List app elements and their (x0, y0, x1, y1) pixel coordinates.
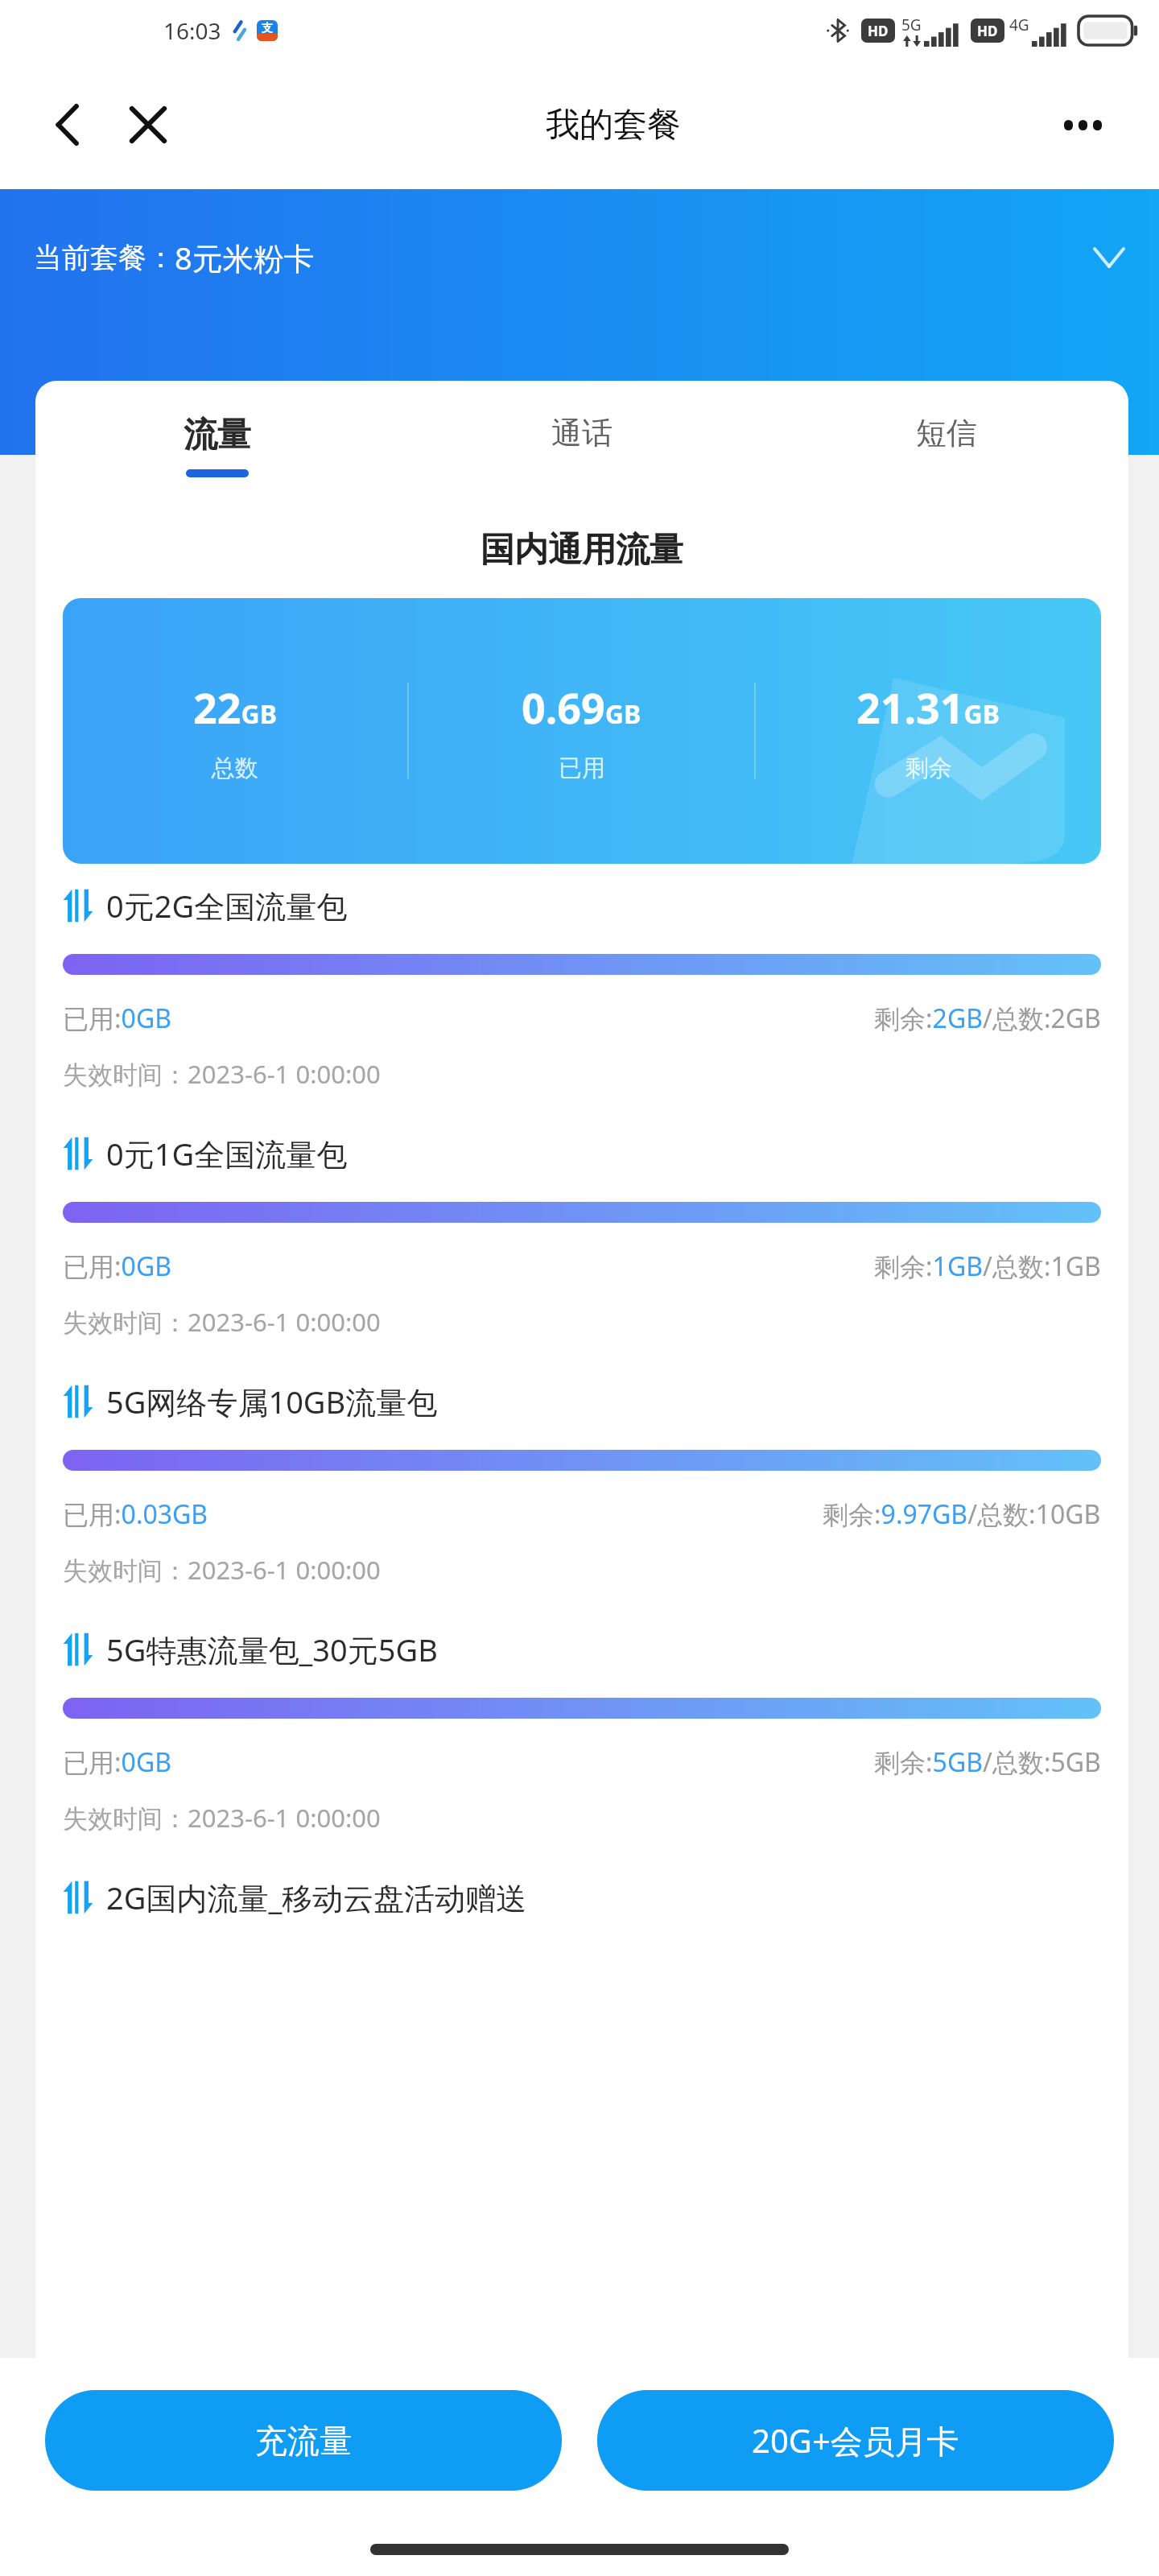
staticText: 当前套餐： (34, 240, 175, 275)
button[interactable]: 0元2G全国流量包 (63, 864, 1101, 1112)
staticText: 已用:0GB (63, 1744, 171, 1780)
staticText: 剩余:5GB/总数:5GB (874, 1744, 1101, 1780)
button[interactable]: More options (1046, 89, 1119, 161)
staticText: 5G (901, 14, 922, 35)
staticText: 失效时间：2023-6-1 0:00:00 (63, 1057, 381, 1091)
staticText: 剩余:1GB/总数:1GB (874, 1249, 1101, 1284)
staticText: 0.69GB (522, 679, 641, 736)
staticText: 8元米粉卡 (175, 237, 315, 279)
staticText: 剩余:9.97GB/总数:10GB (823, 1496, 1101, 1532)
staticText: 失效时间：2023-6-1 0:00:00 (63, 1801, 381, 1835)
staticText: 已用:0GB (63, 1249, 171, 1284)
staticText: HD (977, 22, 998, 40)
staticText: 国内通用流量 (481, 529, 683, 572)
button[interactable]: 5G特惠流量包_30元5GB (63, 1608, 1101, 1856)
button[interactable]: 充流量 (45, 2390, 562, 2491)
button[interactable]: 2G国内流量_移动云盘活动赠送 (63, 1856, 1101, 1942)
staticText: HD (868, 22, 889, 40)
staticText: 16:03 (163, 15, 221, 46)
button[interactable]: 0元1G全国流量包 (63, 1112, 1101, 1360)
staticText: 22GB (193, 679, 277, 736)
staticText: 4G (1009, 14, 1029, 35)
button[interactable]: Back (35, 93, 100, 157)
staticText: 21.31GB (856, 679, 1000, 736)
staticText: 流量 (184, 414, 251, 456)
staticText: 5G特惠流量包_30元5GB (106, 1629, 438, 1670)
button[interactable]: 当前套餐： (34, 189, 1124, 326)
staticText: 短信 (916, 414, 977, 452)
staticText: 通话 (551, 414, 612, 452)
button[interactable]: 流量 (35, 381, 399, 510)
staticText: 总数 (212, 753, 258, 783)
staticText: 已用:0GB (63, 1001, 171, 1036)
staticText: 2G国内流量_移动云盘活动赠送 (106, 1876, 527, 1918)
button[interactable]: 5G网络专属10GB流量包 (63, 1360, 1101, 1608)
staticText: 失效时间：2023-6-1 0:00:00 (63, 1305, 381, 1339)
staticText: 充流量 (255, 2421, 352, 2461)
staticText: 已用:0.03GB (63, 1496, 208, 1532)
staticText: 支 (262, 21, 273, 35)
staticText: 剩余:2GB/总数:2GB (874, 1001, 1101, 1036)
staticText: 5G网络专属10GB流量包 (106, 1381, 438, 1422)
staticText: 0元2G全国流量包 (106, 885, 348, 927)
staticText: 我的套餐 (546, 104, 681, 147)
staticText: 失效时间：2023-6-1 0:00:00 (63, 1553, 381, 1587)
button[interactable]: 短信 (764, 381, 1128, 510)
button[interactable]: Close (116, 93, 180, 157)
staticText: 0元1G全国流量包 (106, 1133, 348, 1174)
button[interactable]: 通话 (399, 381, 764, 510)
staticText: 剩余 (905, 753, 952, 783)
button[interactable]: 20G+会员月卡 (597, 2390, 1114, 2491)
staticText: 20G+会员月卡 (752, 2418, 959, 2462)
staticText: 已用 (559, 753, 605, 783)
